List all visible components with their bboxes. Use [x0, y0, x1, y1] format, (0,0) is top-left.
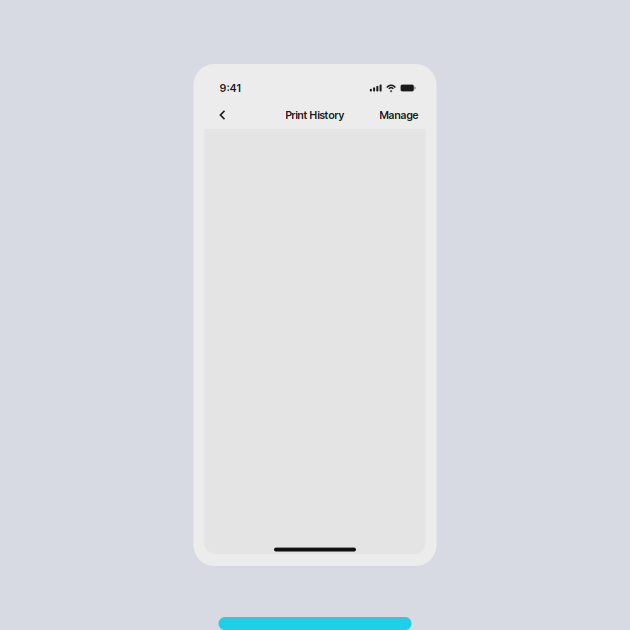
staticText: 9:41 — [219, 81, 241, 94]
button[interactable]: Manage — [379, 103, 418, 127]
button[interactable]: Back — [219, 103, 241, 127]
staticText: Manage — [379, 108, 418, 121]
staticText: Print History — [285, 108, 344, 121]
